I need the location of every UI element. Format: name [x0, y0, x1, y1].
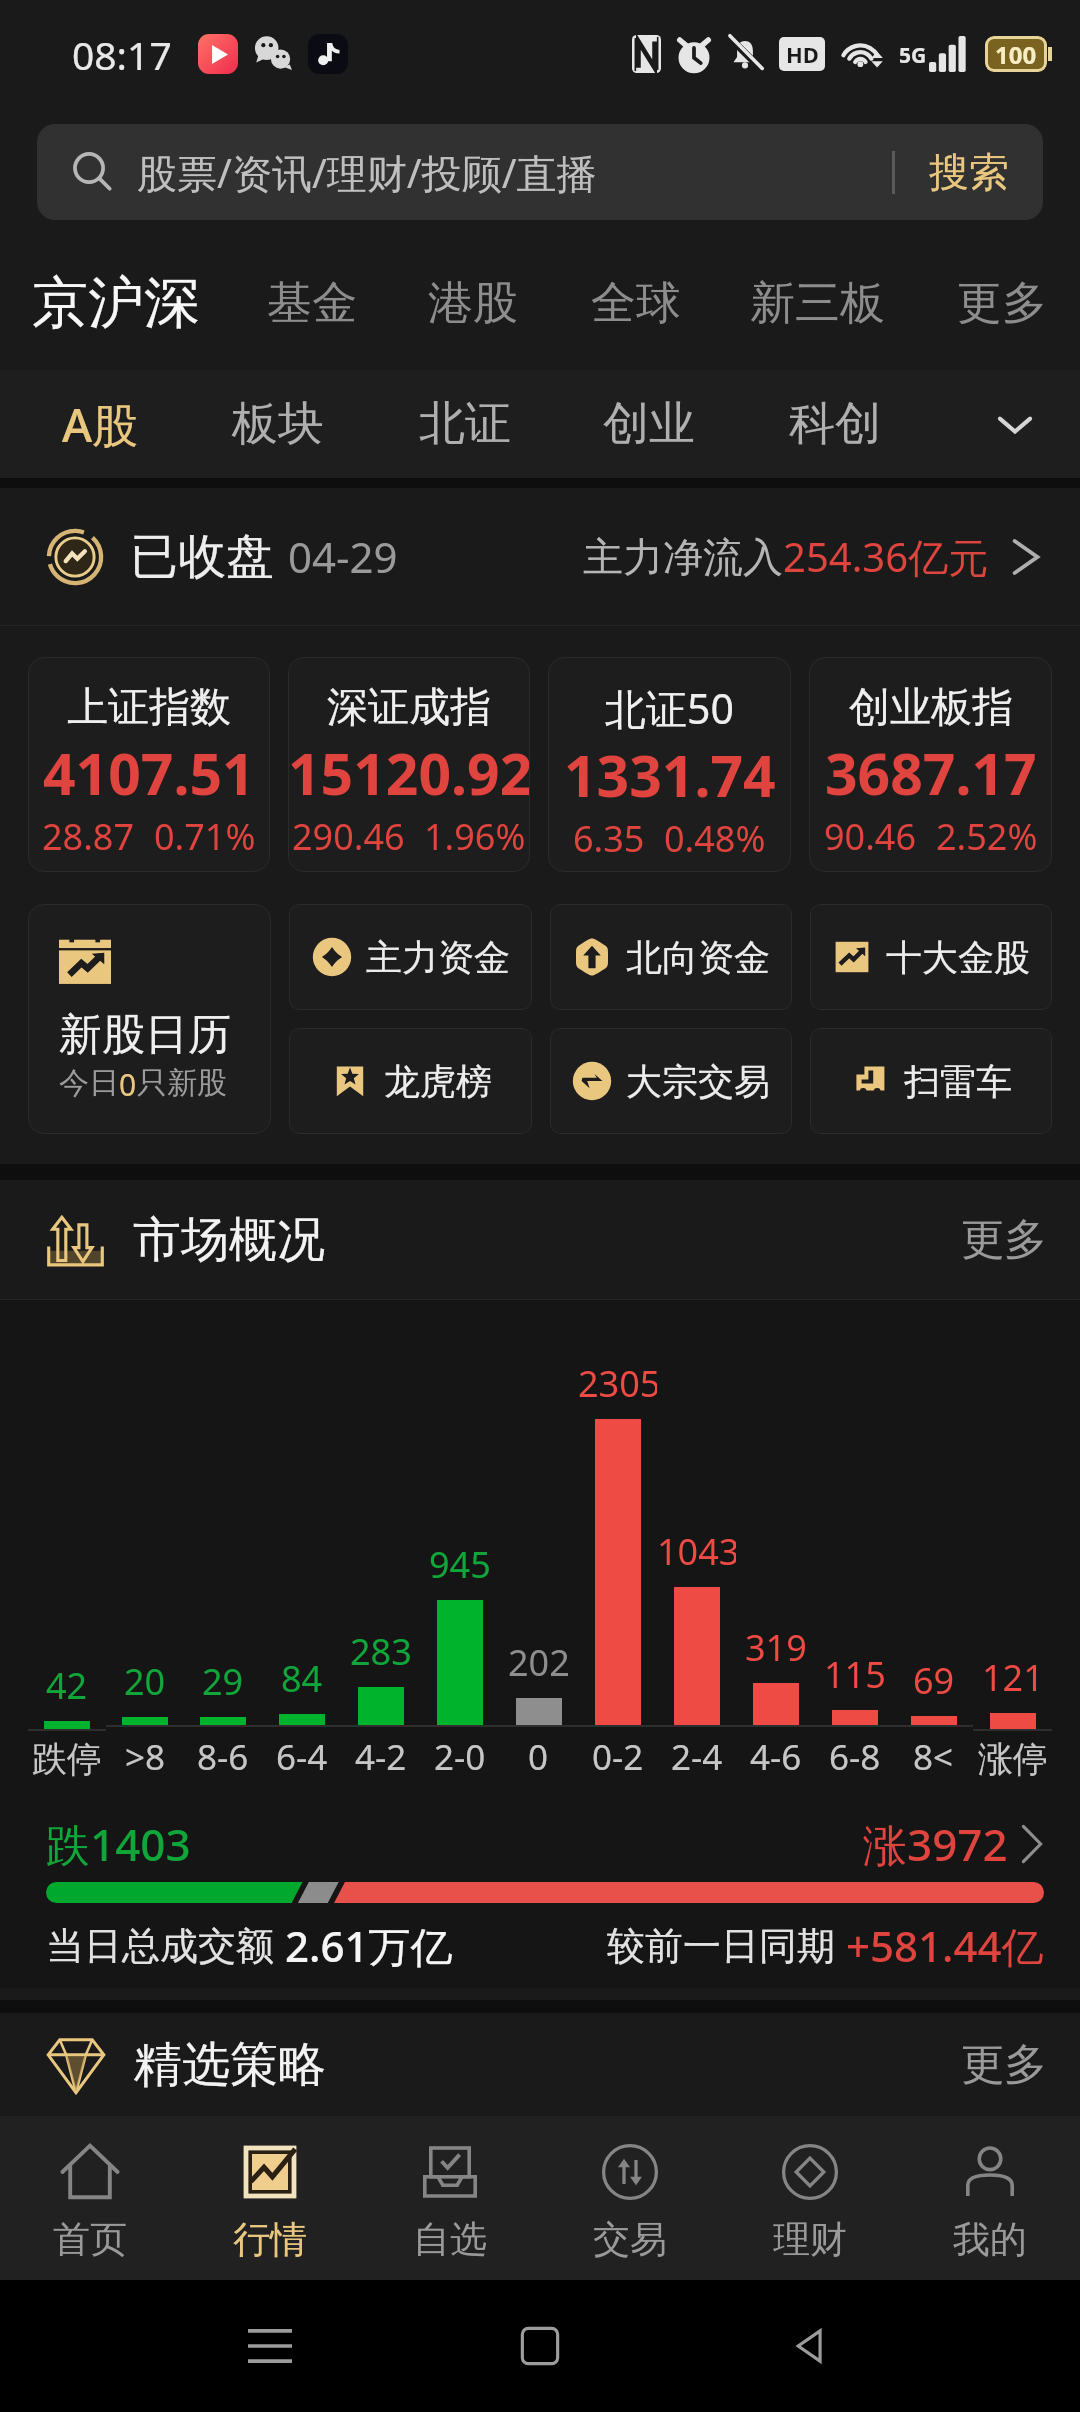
- staticText: 深证成指: [327, 682, 491, 734]
- button[interactable]: 股票/资讯/理财/投顾/直播: [37, 124, 1043, 220]
- button[interactable]: 龙虎榜: [289, 1028, 532, 1134]
- staticText: 2.52%: [936, 812, 1038, 861]
- button[interactable]: 已收盘: [46, 488, 1041, 625]
- button[interactable]: 大宗交易: [550, 1028, 792, 1134]
- staticText: 6.35: [573, 814, 645, 863]
- staticText: 创业: [603, 395, 695, 453]
- staticText: HD: [786, 39, 819, 69]
- button[interactable]: Recents: [135, 2280, 405, 2412]
- button[interactable]: 港股: [413, 236, 533, 370]
- staticText: 科创: [789, 395, 881, 453]
- staticText: 0-2: [592, 1733, 644, 1781]
- staticText: 我的: [953, 2216, 1027, 2263]
- staticText: 4-2: [355, 1733, 407, 1781]
- button[interactable]: 搜索: [895, 135, 1043, 209]
- button[interactable]: 新三板: [737, 236, 897, 370]
- staticText: 254.36亿元: [783, 529, 989, 584]
- button[interactable]: 更多: [951, 2028, 1057, 2102]
- staticText: 新股日历: [59, 1008, 231, 1062]
- staticText: 基金: [267, 275, 357, 332]
- staticText: 3687.17: [825, 734, 1037, 812]
- staticText: 更多: [961, 1213, 1047, 1267]
- button[interactable]: 上证指数: [28, 657, 270, 872]
- staticText: 2-0: [434, 1733, 486, 1781]
- staticText: A股: [62, 393, 139, 456]
- staticText: 首页: [53, 2216, 127, 2263]
- staticText: 4-6: [750, 1733, 802, 1781]
- staticText: 2-4: [671, 1733, 723, 1781]
- button[interactable]: 主力资金: [289, 904, 532, 1010]
- button[interactable]: 我的: [900, 2116, 1080, 2280]
- staticText: 港股: [428, 275, 518, 332]
- button[interactable]: 扫雷车: [810, 1028, 1052, 1134]
- staticText: 跌停: [32, 1737, 102, 1781]
- button[interactable]: 自选: [360, 2116, 540, 2280]
- staticText: 更多: [961, 2038, 1047, 2092]
- staticText: 319: [745, 1623, 807, 1672]
- staticText: 04-29: [288, 528, 398, 585]
- staticText: 28.87: [42, 812, 135, 861]
- button[interactable]: 板块: [208, 370, 348, 478]
- staticText: 精选策略: [134, 2035, 326, 2095]
- button[interactable]: Home: [405, 2280, 675, 2412]
- button[interactable]: 更多: [951, 1203, 1057, 1277]
- button[interactable]: 跌1403: [46, 1809, 1044, 1878]
- staticText: 新三板: [750, 275, 885, 332]
- staticText: 北证50: [605, 680, 734, 736]
- button[interactable]: 交易: [540, 2116, 720, 2280]
- staticText: 跌1403: [46, 1814, 191, 1874]
- staticText: 69: [913, 1656, 955, 1705]
- staticText: 涨停: [978, 1737, 1048, 1781]
- button[interactable]: 展开更多: [950, 370, 1080, 478]
- staticText: 十大金股: [886, 935, 1030, 980]
- staticText: 42: [46, 1661, 88, 1710]
- button[interactable]: 北向资金: [550, 904, 792, 1010]
- button[interactable]: 更多: [942, 236, 1062, 370]
- staticText: 8<: [913, 1733, 954, 1781]
- button[interactable]: 北证: [395, 370, 535, 478]
- staticText: 0.71%: [154, 812, 256, 861]
- button[interactable]: 十大金股: [810, 904, 1052, 1010]
- staticText: 自选: [413, 2216, 487, 2263]
- button[interactable]: 深证成指: [288, 657, 530, 872]
- staticText: 理财: [773, 2216, 847, 2263]
- staticText: >8: [125, 1733, 166, 1781]
- staticText: 只新股: [137, 1064, 227, 1102]
- button[interactable]: 新股日历: [28, 904, 271, 1134]
- button[interactable]: 行情: [180, 2116, 360, 2280]
- staticText: 1043: [657, 1527, 736, 1576]
- staticText: 今日: [59, 1064, 119, 1102]
- button[interactable]: 基金: [252, 236, 372, 370]
- button[interactable]: 理财: [720, 2116, 900, 2280]
- button[interactable]: Back: [675, 2280, 945, 2412]
- staticText: 较前一日同期: [607, 1922, 835, 1970]
- button[interactable]: 全球: [576, 236, 696, 370]
- staticText: 北向资金: [626, 935, 770, 980]
- button[interactable]: 北证50: [548, 657, 791, 872]
- button[interactable]: 京沪深: [16, 236, 216, 370]
- staticText: 20: [124, 1657, 166, 1706]
- staticText: 板块: [232, 395, 324, 453]
- staticText: 主力资金: [366, 935, 510, 980]
- staticText: 当日总成交额: [46, 1922, 274, 1970]
- staticText: +581.44亿: [846, 1917, 1044, 1974]
- staticText: 0: [528, 1733, 549, 1781]
- staticText: 北证: [419, 395, 511, 453]
- staticText: 2305: [578, 1359, 657, 1408]
- staticText: 1.96%: [424, 812, 526, 861]
- button[interactable]: 创业板指: [809, 657, 1052, 872]
- staticText: 115: [824, 1650, 886, 1699]
- button[interactable]: 首页: [0, 2116, 180, 2280]
- button[interactable]: 创业: [579, 370, 719, 478]
- staticText: 2.61万亿: [285, 1917, 453, 1974]
- staticText: 0.48%: [664, 814, 766, 863]
- staticText: 945: [429, 1540, 491, 1589]
- button[interactable]: A股: [30, 370, 170, 478]
- staticText: 创业板指: [849, 682, 1013, 734]
- staticText: 上证指数: [67, 682, 231, 734]
- button[interactable]: 科创: [765, 370, 905, 478]
- staticText: 08:17: [72, 28, 172, 81]
- staticText: 1331.74: [564, 736, 776, 814]
- staticText: 大宗交易: [626, 1059, 770, 1104]
- staticText: 0: [119, 1064, 137, 1105]
